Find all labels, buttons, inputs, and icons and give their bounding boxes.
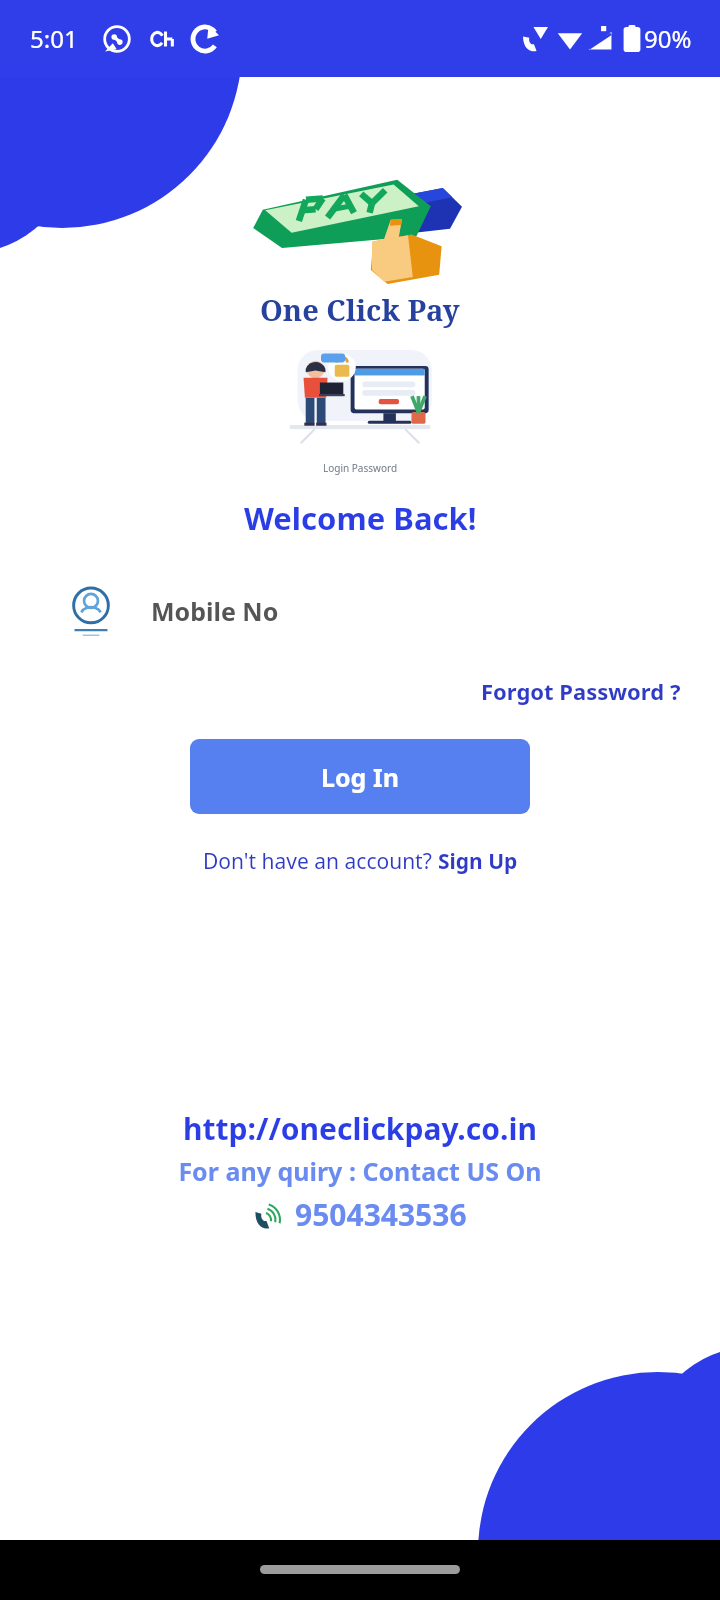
staticText: One Click Pay [260,290,460,329]
button[interactable]: Forgot Password ? [475,670,687,712]
staticText: 5:01 [30,22,78,55]
staticText: Forgot Password ? [481,676,681,706]
staticText: Sign Up [438,847,518,876]
button[interactable]: http://oneclickpay.co.in [183,1108,537,1149]
staticText: For any quiry : Contact US On [178,1154,542,1188]
button[interactable]: Mobile No [33,563,687,658]
button[interactable]: Sign Up [438,847,518,876]
staticText: Don't have an account? [203,847,438,876]
staticText: Welcome Back! [244,497,477,539]
staticText: Log In [321,760,399,794]
button[interactable]: Log In [190,739,530,814]
button[interactable]: Call 9504343536 [253,1194,467,1235]
staticText: 90% [644,22,692,55]
staticText: Mobile No [151,594,279,628]
staticText: 9504343536 [295,1194,467,1235]
staticText: http://oneclickpay.co.in [183,1108,537,1149]
other: Call 9504343536 [253,1200,283,1230]
staticText: Login Password [323,461,398,475]
